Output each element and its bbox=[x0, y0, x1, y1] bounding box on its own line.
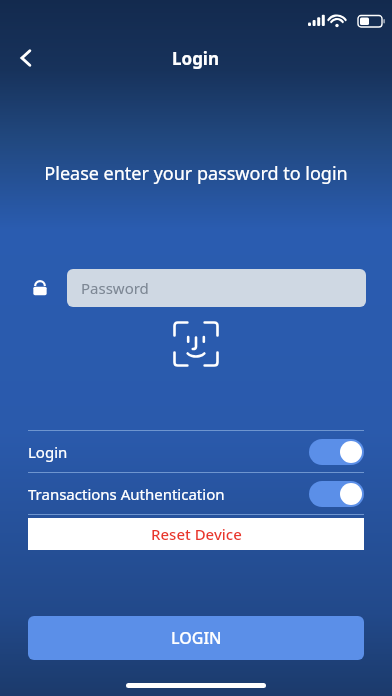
staticText: Login bbox=[28, 442, 309, 462]
staticText: Reset Device bbox=[151, 524, 242, 544]
staticText: Password bbox=[81, 278, 149, 298]
staticText: Login bbox=[172, 47, 220, 70]
staticText: Please enter your password to login bbox=[44, 161, 348, 186]
button[interactable]: LOGIN bbox=[28, 616, 364, 660]
button[interactable]: Transactions Authentication bbox=[28, 473, 364, 514]
staticText: Transactions Authentication bbox=[28, 484, 309, 504]
button[interactable]: Reset Device bbox=[28, 518, 364, 550]
staticText: LOGIN bbox=[171, 627, 222, 649]
button[interactable]: Password bbox=[67, 269, 366, 307]
button[interactable]: Face ID bbox=[170, 318, 222, 370]
button[interactable]: Login bbox=[28, 431, 364, 472]
button[interactable]: Back bbox=[4, 36, 48, 80]
